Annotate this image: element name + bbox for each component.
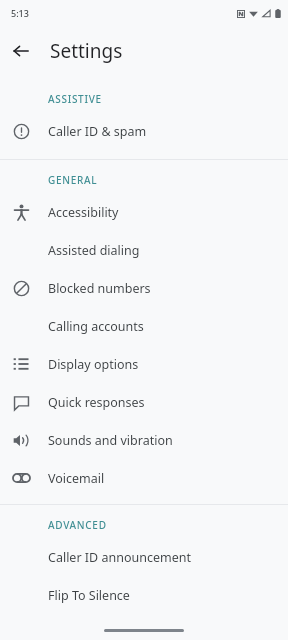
button[interactable]: Flip To Silence xyxy=(0,576,288,614)
button[interactable]: Caller ID announcement xyxy=(0,538,288,576)
staticText: Quick responses xyxy=(48,394,145,411)
staticText: Accessibility xyxy=(48,204,119,221)
button[interactable]: Blocked numbers xyxy=(0,269,288,307)
staticText: Voicemail xyxy=(48,470,105,487)
button[interactable]: Sounds and vibration xyxy=(0,421,288,459)
staticText: ADVANCED xyxy=(48,518,107,532)
staticText: Caller ID announcement xyxy=(48,549,191,566)
staticText: Sounds and vibration xyxy=(48,432,173,449)
staticText: Caller ID & spam xyxy=(48,123,147,140)
button[interactable]: Display options xyxy=(0,345,288,383)
button[interactable]: Quick responses xyxy=(0,383,288,421)
staticText: Display options xyxy=(48,356,139,373)
staticText: Calling accounts xyxy=(48,318,144,335)
button[interactable]: Caller ID & spam xyxy=(0,112,288,150)
staticText: 5:13 xyxy=(11,7,29,19)
staticText: Settings xyxy=(50,38,123,64)
button[interactable]: Voicemail xyxy=(0,459,288,497)
button[interactable]: Accessibility xyxy=(0,193,288,231)
button[interactable]: Calling accounts xyxy=(0,307,288,345)
staticText: Blocked numbers xyxy=(48,280,151,297)
button[interactable]: Assisted dialing xyxy=(0,231,288,269)
staticText: Flip To Silence xyxy=(48,587,130,604)
staticText: ASSISTIVE xyxy=(48,92,102,106)
staticText: GENERAL xyxy=(48,173,98,187)
button[interactable]: Back xyxy=(3,33,39,69)
staticText: Assisted dialing xyxy=(48,242,140,259)
